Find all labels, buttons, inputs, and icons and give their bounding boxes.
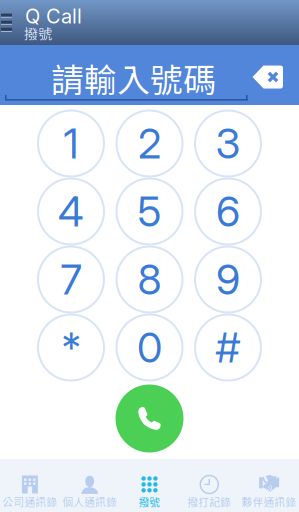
- staticText: 夥伴通訊錄: [242, 494, 297, 509]
- staticText: 6: [216, 186, 240, 236]
- button[interactable]: 公司通訊錄: [0, 459, 60, 512]
- button[interactable]: 8: [110, 245, 189, 313]
- button[interactable]: 0: [110, 313, 189, 381]
- button[interactable]: Delete: [248, 60, 288, 94]
- staticText: 公司通訊錄: [2, 494, 57, 509]
- staticText: 撥號: [138, 494, 160, 509]
- staticText: 撥號: [24, 23, 52, 43]
- button[interactable]: 5: [110, 177, 189, 245]
- button[interactable]: #: [189, 313, 267, 381]
- staticText: 撥打記錄: [187, 494, 231, 509]
- staticText: Q Call: [25, 4, 82, 28]
- staticText: 請輸入號碼: [51, 54, 216, 101]
- staticText: 3: [215, 118, 240, 168]
- button[interactable]: 6: [189, 177, 267, 245]
- button[interactable]: 9: [189, 245, 267, 313]
- button[interactable]: 2: [110, 109, 189, 177]
- staticText: 7: [60, 254, 81, 304]
- button[interactable]: Call: [101, 381, 197, 455]
- staticText: 8: [137, 254, 161, 304]
- button[interactable]: 撥打記錄: [179, 459, 239, 512]
- button[interactable]: 3: [189, 109, 267, 177]
- button[interactable]: 撥號: [120, 459, 179, 512]
- staticText: 0: [137, 322, 162, 372]
- staticText: 4: [58, 186, 84, 236]
- staticText: #: [215, 322, 240, 372]
- button[interactable]: *: [32, 313, 110, 381]
- staticText: 5: [137, 186, 161, 236]
- staticText: 1: [63, 118, 78, 168]
- button[interactable]: 4: [32, 177, 110, 245]
- button[interactable]: 個人通訊錄: [60, 459, 120, 512]
- staticText: *: [61, 322, 80, 372]
- button[interactable]: 夥伴通訊錄: [239, 459, 299, 512]
- staticText: 9: [216, 254, 240, 304]
- staticText: 個人通訊錄: [62, 494, 117, 509]
- button[interactable]: Menu: [0, 0, 24, 45]
- button[interactable]: 1: [32, 109, 110, 177]
- button[interactable]: 7: [32, 245, 110, 313]
- staticText: 2: [138, 118, 161, 168]
